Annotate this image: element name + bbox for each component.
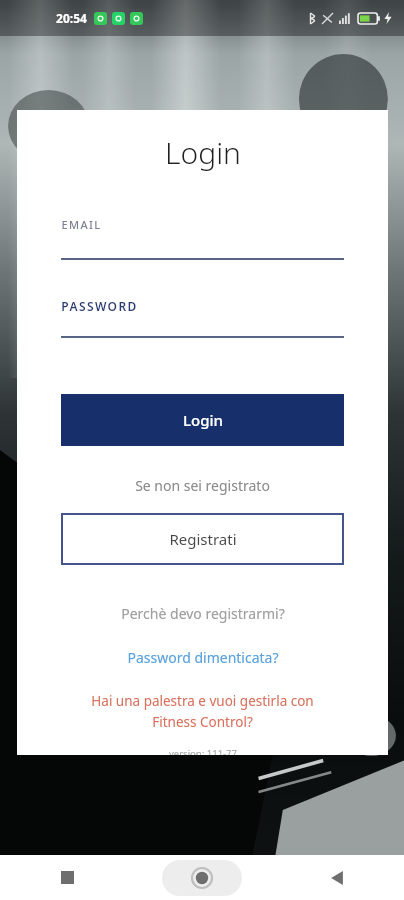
button[interactable]: Registrati [61,513,344,565]
staticText: Hai una palestra e vuoi gestirla con [91,692,314,710]
staticText: EMAIL [61,217,102,232]
staticText: Perchè devo registrarmi? [121,604,285,623]
button[interactable]: Back [269,855,404,900]
staticText: 20:54 [56,10,87,26]
staticText: Login [165,132,241,173]
button[interactable]: Password dimenticata? [119,645,287,670]
button[interactable]: Hai una palestra e vuoi gestirla con [81,690,324,733]
button[interactable]: Home [134,855,269,900]
staticText: version: 111-77 [169,747,237,755]
staticText: Fitness Control? [152,713,253,731]
button[interactable]: Recent apps [0,855,134,900]
staticText: Password dimenticata? [127,648,279,667]
staticText: Se non sei registrato [135,476,270,495]
staticText: Login [183,410,223,430]
button[interactable]: Perchè devo registrarmi? [113,601,293,626]
staticText: PASSWORD [61,298,138,314]
button[interactable]: Login [61,394,344,446]
staticText: Registrati [169,529,237,549]
